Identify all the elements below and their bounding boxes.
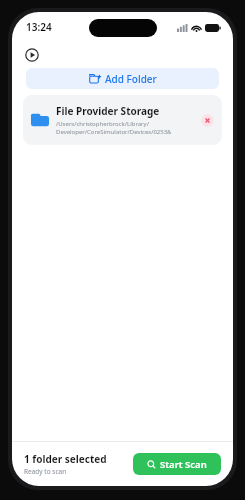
button[interactable]: Remove folder — [201, 114, 214, 127]
staticText: 13:24 — [26, 20, 52, 34]
staticText: Start Scan — [160, 458, 207, 471]
button[interactable]: File Provider Storage — [23, 95, 222, 145]
staticText: Developer/CoreSimulator/Devices/0253& — [56, 128, 172, 136]
staticText: /Users/christopherbrock/Library/ — [56, 120, 149, 128]
staticText: Ready to scan — [24, 467, 67, 476]
staticText: Add Folder — [105, 72, 157, 86]
staticText: File Provider Storage — [56, 104, 160, 118]
button[interactable]: Add Folder — [26, 68, 219, 89]
button[interactable]: Start Scan — [133, 453, 221, 475]
staticText: 1 folder selected — [24, 452, 107, 466]
button[interactable]: Play — [22, 45, 42, 65]
